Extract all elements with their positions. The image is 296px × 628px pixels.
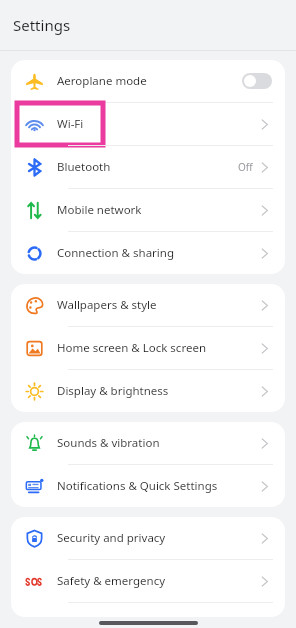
staticText: Settings bbox=[13, 15, 71, 35]
staticText: Bluetooth bbox=[57, 159, 238, 175]
button[interactable]: Connection & sharing bbox=[11, 232, 285, 274]
button[interactable]: Aeroplane mode bbox=[11, 60, 285, 102]
staticText: Mobile network bbox=[57, 202, 260, 218]
staticText: Display & brightness bbox=[57, 383, 260, 399]
button[interactable]: Wi-Fi bbox=[11, 103, 285, 145]
staticText: Off bbox=[238, 160, 253, 174]
button[interactable]: Sounds & vibration bbox=[11, 422, 285, 464]
button[interactable]: Home screen & Lock screen bbox=[11, 327, 285, 369]
button[interactable]: Security and privacy bbox=[11, 517, 285, 559]
button[interactable]: Notifications & Quick Settings bbox=[11, 465, 285, 507]
staticText: Safety & emergency bbox=[57, 573, 260, 589]
staticText: Home screen & Lock screen bbox=[57, 340, 260, 356]
staticText: Sounds & vibration bbox=[57, 435, 260, 451]
button[interactable]: Bluetooth bbox=[11, 146, 285, 188]
button[interactable]: Display & brightness bbox=[11, 370, 285, 412]
button[interactable]: Wallpapers & style bbox=[11, 284, 285, 326]
staticText: Security and privacy bbox=[57, 530, 260, 546]
staticText: Wi-Fi bbox=[57, 116, 260, 132]
button[interactable]: Safety & emergency bbox=[11, 560, 285, 602]
staticText: Wallpapers & style bbox=[57, 297, 260, 313]
button[interactable]: Mobile network bbox=[11, 189, 285, 231]
staticText: Notifications & Quick Settings bbox=[57, 478, 260, 494]
button[interactable]: Aeroplane mode switch bbox=[242, 73, 272, 89]
staticText: Aeroplane mode bbox=[57, 73, 242, 89]
staticText: Connection & sharing bbox=[57, 245, 260, 261]
